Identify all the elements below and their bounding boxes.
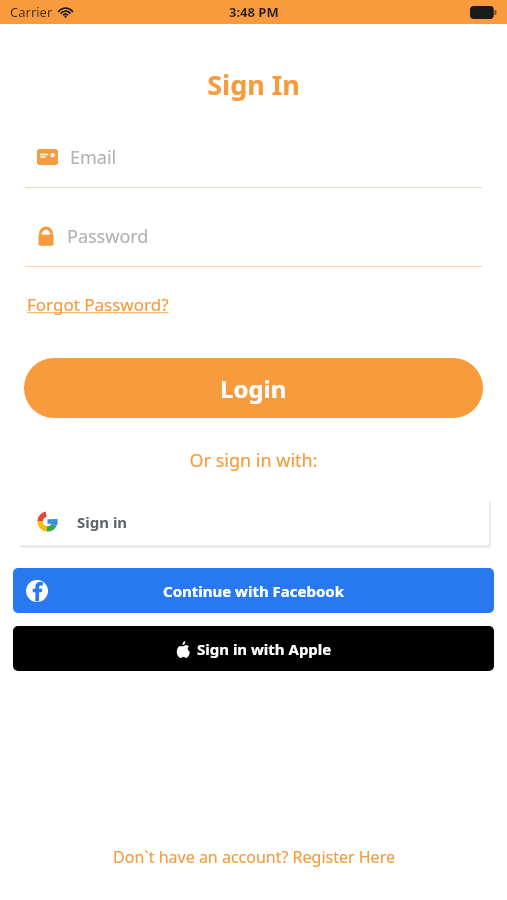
staticText: Or sign in with: (0, 448, 507, 473)
staticText: Sign In (0, 66, 507, 103)
button[interactable]: Apple (13, 626, 494, 671)
button[interactable]: Password (25, 220, 482, 252)
staticText: Sign in (77, 512, 128, 532)
button[interactable]: Login (24, 358, 483, 418)
button[interactable]: Facebook (13, 568, 494, 613)
button[interactable]: Email (25, 141, 482, 173)
button[interactable]: Forgot Password? (27, 289, 169, 320)
staticText: Continue with Facebook (163, 581, 345, 601)
button[interactable]: Sign in (18, 498, 489, 545)
staticText: Don`t have an account? Register Here (113, 846, 395, 868)
staticText: Password (67, 224, 149, 249)
button[interactable]: Don`t have an account? Register Here (105, 844, 403, 870)
other: Facebook (26, 580, 48, 602)
staticText: Sign in with Apple (197, 639, 332, 659)
other: Apple (176, 641, 190, 658)
staticText: Carrier (10, 3, 53, 21)
staticText: Login (220, 372, 287, 405)
staticText: Email (70, 145, 117, 170)
staticText: 3:48 PM (229, 3, 279, 21)
staticText: Forgot Password? (27, 293, 169, 316)
